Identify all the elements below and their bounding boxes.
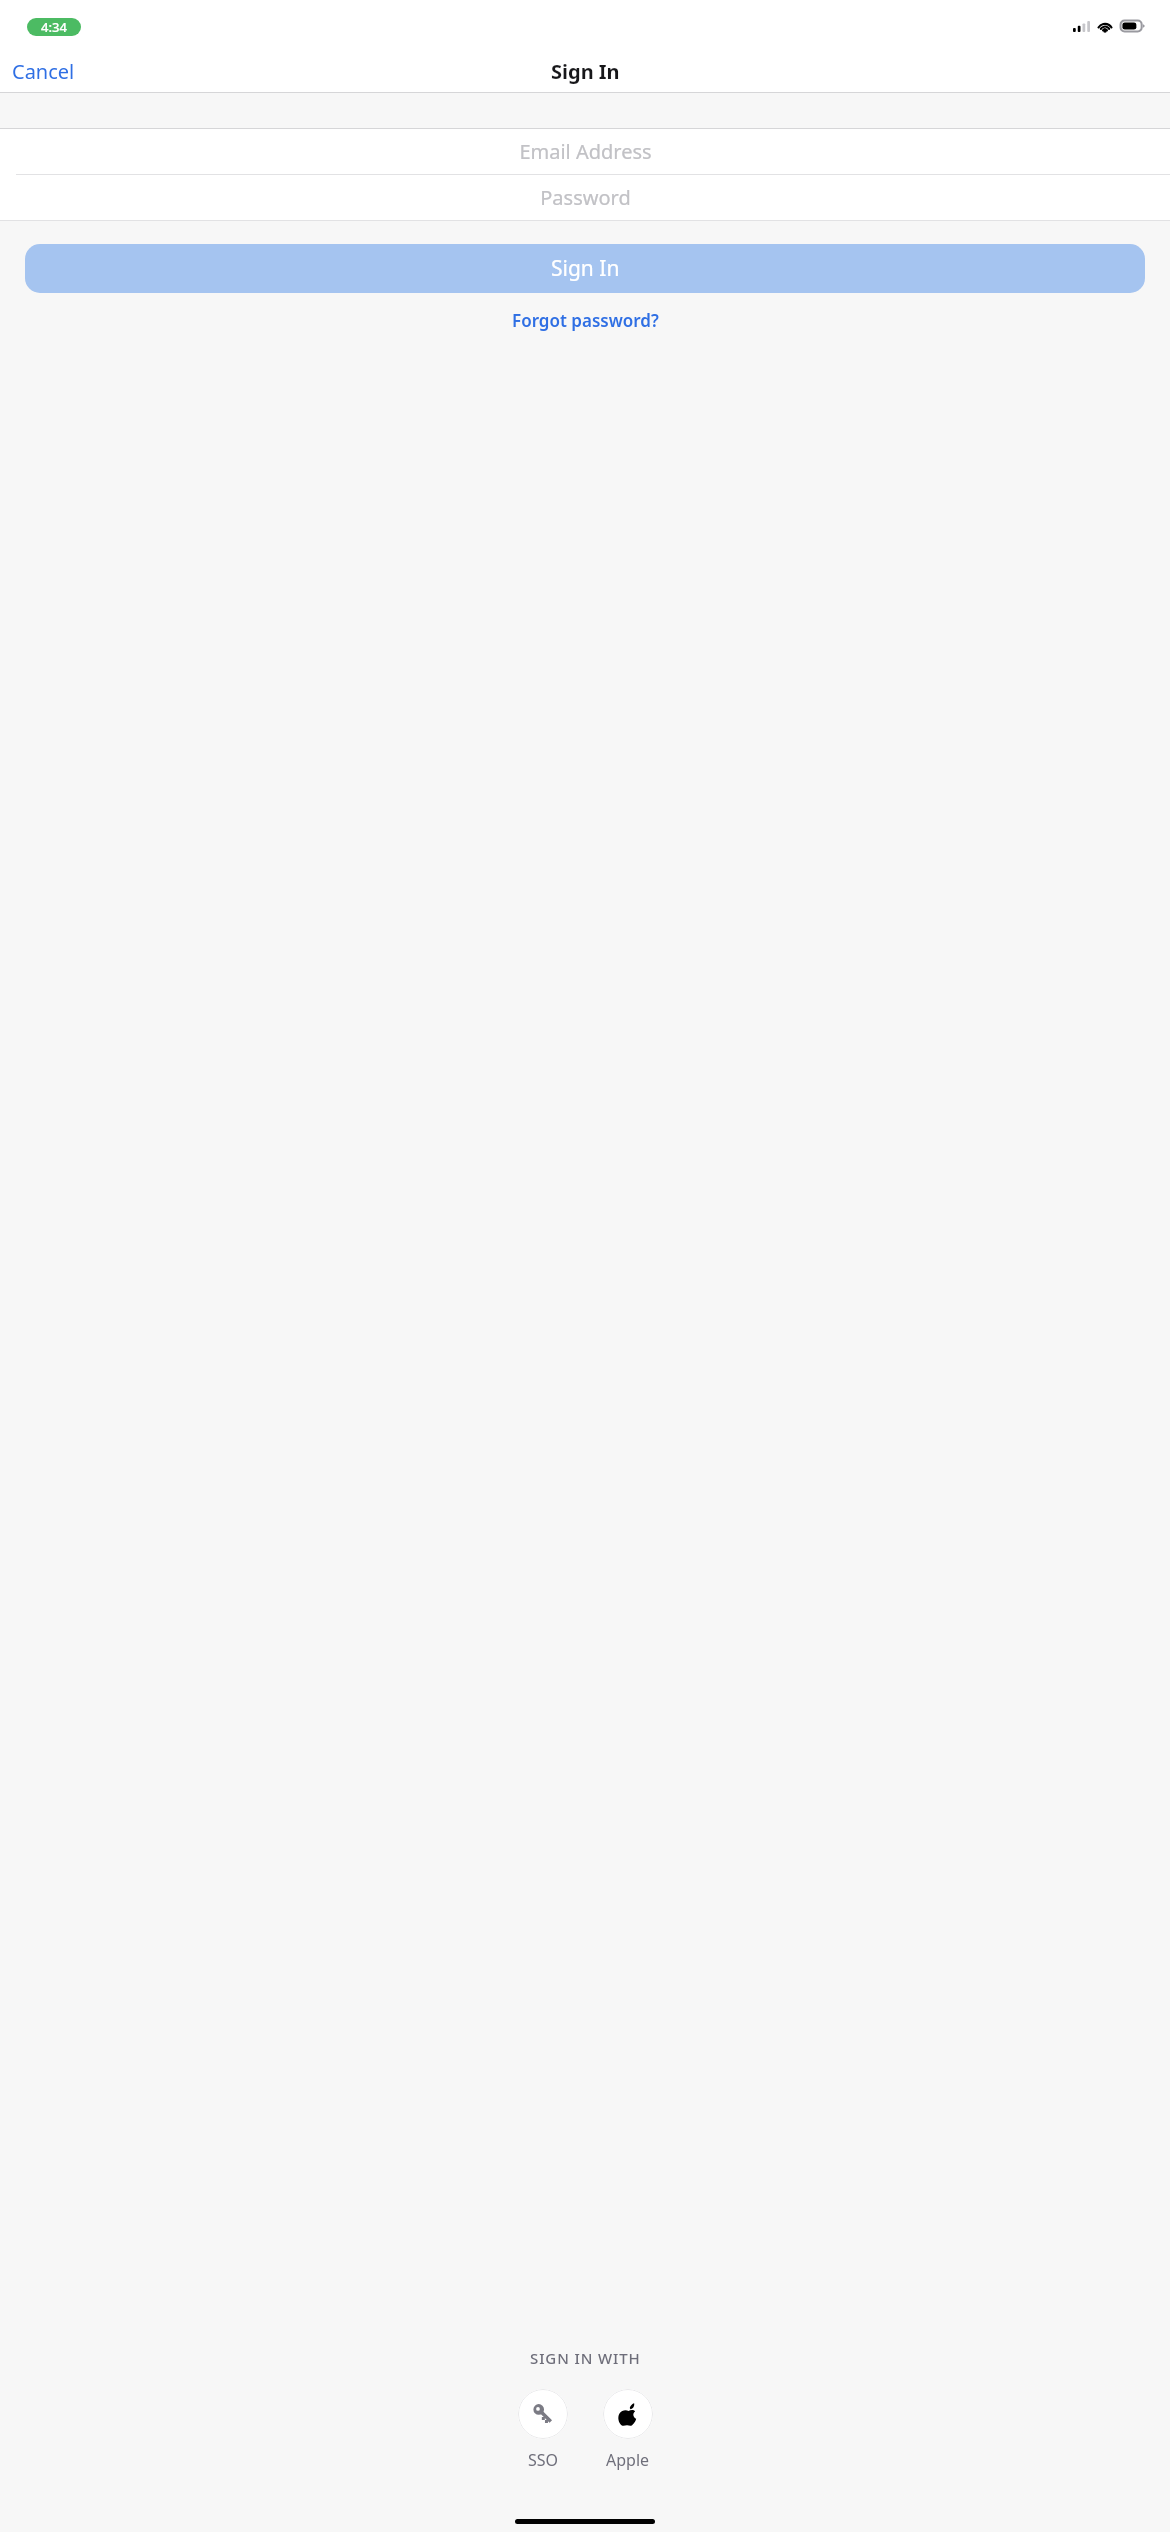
staticText: 4:34 [41,18,67,36]
staticText: Email Address [519,138,652,165]
staticText: Cancel [12,58,75,85]
button[interactable]: Sign in with Apple [599,2385,657,2475]
button[interactable]: Sign In [25,244,1145,293]
staticText: Password [540,184,631,211]
button[interactable]: Password [0,175,1170,220]
button[interactable]: Sign in with SSO [514,2385,572,2475]
staticText: SSO [528,2449,559,2471]
staticText: SIGN IN WITH [530,2348,641,2368]
staticText: Sign In [551,58,620,85]
button[interactable]: Email Address [0,129,1170,174]
button[interactable]: Cancel [0,52,87,91]
button[interactable]: Forgot password? [498,304,673,337]
staticText: Sign In [551,254,620,283]
staticText: Forgot password? [512,309,659,332]
staticText: Apple [606,2449,650,2471]
